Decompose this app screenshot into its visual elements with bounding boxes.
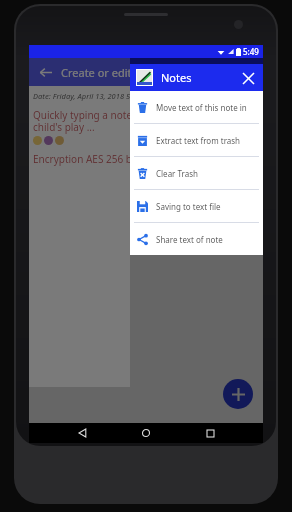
staticText: Quickly typing a note, as easy as child'… [33, 108, 185, 134]
button[interactable]: Extract text from trash [130, 124, 263, 156]
button[interactable]: Add note [223, 379, 253, 409]
staticText: Move text of this note in trash [156, 102, 259, 113]
button[interactable]: Home [136, 423, 156, 443]
staticText: Clear Trash [156, 168, 198, 179]
staticText: Extract text from trash [156, 135, 241, 146]
button[interactable]: Close [237, 67, 259, 89]
button[interactable]: Back [35, 62, 55, 82]
staticText: Share text of note [156, 234, 223, 245]
staticText: Saving to text file [156, 201, 221, 212]
staticText: 5:49 [243, 46, 259, 57]
button[interactable]: Move text of this note in trash [130, 91, 263, 123]
staticText: Date: Friday, April 13, 2018 5:49 PM [33, 91, 154, 101]
staticText: Encryption AES 256 bit [33, 152, 139, 166]
button[interactable]: Back [73, 423, 93, 443]
button[interactable]: Share text of note [130, 223, 263, 255]
staticText: Create or edit note [61, 65, 159, 80]
staticText: Notes [161, 70, 192, 85]
button[interactable]: Recents [200, 423, 220, 443]
button[interactable]: Saving to text file [130, 190, 263, 222]
button[interactable]: Clear Trash [130, 157, 263, 189]
button[interactable]: Notes [130, 64, 263, 91]
